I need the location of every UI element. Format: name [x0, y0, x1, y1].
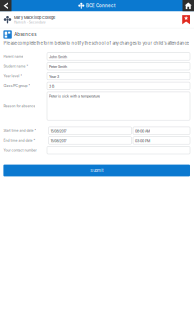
button[interactable]: Submit [0, 165, 194, 176]
staticText: Parent name [3, 54, 23, 58]
staticText: Student name * [3, 64, 28, 68]
staticText: Start time and date * [3, 129, 36, 133]
staticText: Peter Smith [49, 65, 67, 69]
staticText: Mary MacKillop College [14, 15, 55, 20]
button[interactable]: Back [0, 0, 11, 11]
staticText: 15/08/2017 [51, 129, 67, 133]
staticText: Reason for absence [3, 104, 35, 108]
staticText: Class/PC group * [3, 84, 30, 88]
staticText: 3 B [49, 84, 54, 89]
button[interactable]: Mary MacKillop College [0, 11, 194, 28]
button[interactable]: Home [182, 0, 194, 11]
staticText: 08:00 AM [135, 129, 150, 133]
staticText: End time and date * [3, 138, 35, 142]
staticText: Please complete the form below to notify… [3, 40, 189, 46]
staticText: BCE Connect [86, 3, 116, 8]
staticText: Peter is sick with a temperature [49, 94, 100, 98]
staticText: Submit [90, 168, 103, 173]
staticText: John Smith [49, 55, 67, 59]
staticText: 03:00 PM [135, 139, 150, 143]
staticText: Year 3 [49, 74, 59, 79]
staticText: Absences [14, 32, 36, 37]
staticText: Year level * [3, 74, 22, 78]
staticText: Hamish - Secondary [14, 21, 46, 24]
staticText: Your contact number [3, 148, 36, 152]
staticText: 15/08/2017 [51, 139, 67, 143]
